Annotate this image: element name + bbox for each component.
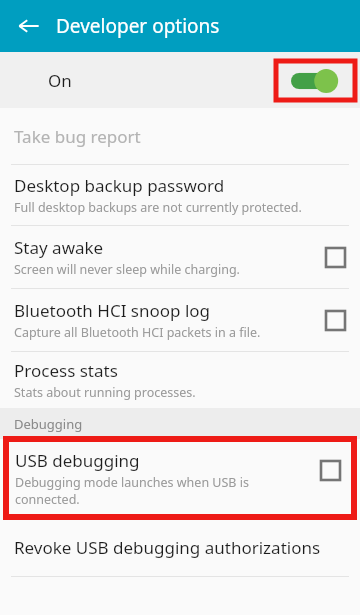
staticText: Desktop backup password <box>14 174 225 197</box>
staticText: Screen will never sleep while charging. <box>14 261 240 278</box>
button[interactable]: USB debugging <box>6 439 354 517</box>
staticText: Capture all Bluetooth HCI packets in a f… <box>14 324 261 341</box>
button[interactable]: Stay awake <box>0 226 360 288</box>
button[interactable]: Bluetooth HCI snoop log <box>0 289 360 351</box>
staticText: Debugging <box>14 415 83 433</box>
button[interactable]: On <box>0 52 360 108</box>
button[interactable]: Navigate up <box>10 7 48 45</box>
staticText: Bluetooth HCI snoop log <box>14 299 211 322</box>
button[interactable]: Bluetooth HCI snoop log checkbox <box>321 306 349 334</box>
staticText: Take bug report <box>14 125 141 148</box>
button[interactable]: Revoke USB debugging authorizations <box>0 519 360 576</box>
staticText: Stats about running processes. <box>14 384 196 401</box>
button[interactable]: Stay awake checkbox <box>321 243 349 271</box>
staticText: Process stats <box>14 359 118 382</box>
staticText: USB debugging <box>15 449 140 472</box>
button[interactable]: Desktop backup password <box>0 165 360 225</box>
staticText: Developer options <box>56 13 220 39</box>
staticText: Full desktop backups are not currently p… <box>14 199 302 216</box>
button[interactable]: USB debugging checkbox <box>317 457 343 483</box>
button[interactable]: Take bug report <box>0 108 360 164</box>
staticText: Revoke USB debugging authorizations <box>14 536 321 559</box>
button[interactable]: Developer options on/off <box>290 68 342 94</box>
staticText: On <box>48 69 72 92</box>
button[interactable]: Process stats <box>0 352 360 408</box>
staticText: Debugging mode launches when USB is conn… <box>15 474 294 508</box>
staticText: Stay awake <box>14 236 104 259</box>
